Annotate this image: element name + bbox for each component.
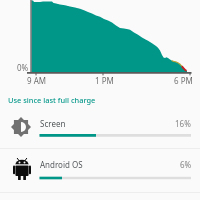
staticText: Use since last full charge xyxy=(8,95,96,105)
staticText: Android OS xyxy=(40,159,83,170)
staticText: 16% xyxy=(175,118,191,129)
staticText: Screen xyxy=(40,118,66,129)
staticText: 9 AM xyxy=(27,75,47,86)
button[interactable]: Android OS xyxy=(0,150,200,192)
button[interactable]: Screen xyxy=(0,110,200,148)
staticText: 0% xyxy=(17,62,29,73)
staticText: 6 PM xyxy=(174,75,193,86)
staticText: 6% xyxy=(180,159,192,170)
staticText: 1 PM xyxy=(95,75,114,86)
